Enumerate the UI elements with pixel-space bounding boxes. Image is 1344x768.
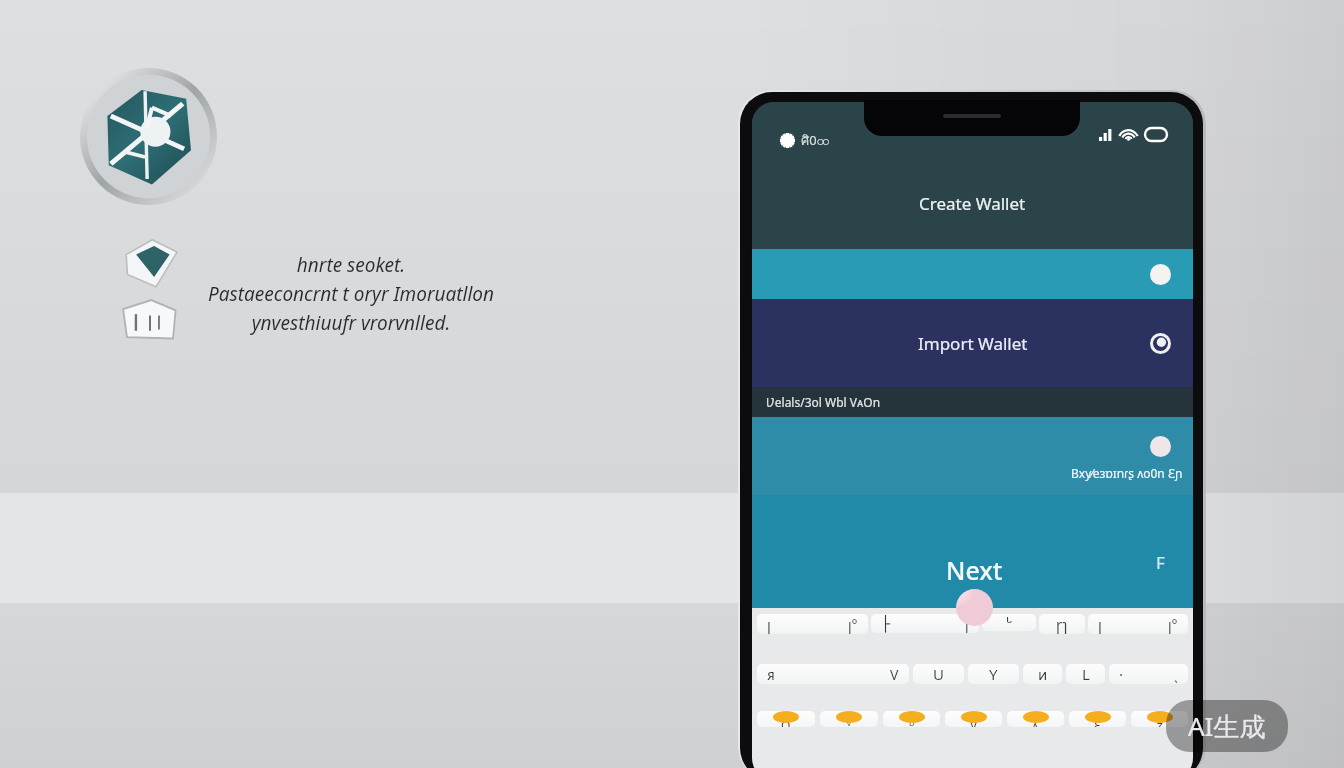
staticText: ꞁ°: [1168, 615, 1178, 634]
button[interactable]: ᴙ: [757, 664, 909, 684]
button[interactable]: ├: [871, 614, 979, 633]
other: Import wallet icon: [1150, 333, 1171, 354]
button[interactable]: ᴎ: [1023, 664, 1062, 684]
staticText: ·: [1119, 664, 1124, 684]
staticText: ᵛ: [847, 717, 851, 727]
staticText: ꞁ: [965, 614, 969, 633]
staticText: Next: [946, 553, 1003, 587]
button[interactable]: ᴀ: [1007, 711, 1064, 727]
staticText: hnrte seoket.: [186, 252, 516, 278]
staticText: ศิ0ထ: [801, 130, 830, 151]
staticText: ˎ: [1174, 665, 1178, 684]
button[interactable]: ꞁ: [1088, 614, 1188, 634]
staticText: ᴙ: [767, 664, 775, 684]
button[interactable]: ᵛ: [820, 711, 878, 727]
staticText: Create Wallet: [919, 192, 1026, 215]
staticText: ʓ: [1157, 717, 1163, 727]
staticText: Q: [781, 717, 791, 727]
staticText: ᴀ: [1032, 717, 1039, 727]
button[interactable]: Create Wallet: [752, 158, 1193, 249]
button[interactable]: ᴰ: [883, 711, 940, 727]
button[interactable]: Import Wallet: [752, 299, 1193, 387]
staticText: ɼɿ: [1056, 614, 1068, 634]
staticText: ꞁ: [1098, 614, 1102, 634]
staticText: F: [1156, 551, 1165, 574]
staticText: Bxy⁄eɜɒɪnɾʂ ʌo0n Ɛɲ: [1071, 465, 1183, 481]
staticText: ᴰ: [909, 717, 915, 727]
button[interactable]: ·: [1109, 664, 1188, 684]
button[interactable]: Q: [757, 711, 815, 727]
button[interactable]: Y: [968, 664, 1019, 684]
staticText: ꞁ: [767, 614, 771, 634]
staticText: ꞁ°: [848, 615, 858, 634]
button[interactable]: [752, 249, 1193, 299]
button[interactable]: ʓ: [1131, 711, 1188, 727]
staticText: AI生成: [1188, 708, 1266, 744]
button[interactable]: V: [945, 711, 1002, 727]
staticText: Ɛ: [1094, 717, 1102, 727]
button[interactable]: Ɛ: [1069, 711, 1126, 727]
button[interactable]: U: [913, 664, 964, 684]
button[interactable]: ꞁ: [757, 614, 868, 634]
staticText: V: [890, 665, 899, 684]
staticText: ├: [881, 615, 891, 632]
staticText: ynvesthiuufr vrorvnlled.: [186, 310, 516, 336]
button[interactable]: L: [1066, 664, 1105, 684]
staticText: ᒡ: [1006, 614, 1013, 631]
button[interactable]: Next: [932, 549, 1017, 591]
button[interactable]: ᒡ: [982, 614, 1036, 631]
staticText: Pastaeeconcrnt t oryr Imoruatllon: [186, 281, 516, 307]
staticText: Ʋelals/3ol Wbl VᴀOn: [766, 394, 881, 410]
staticText: L: [1082, 664, 1090, 684]
staticText: ᴎ: [1038, 664, 1048, 684]
staticText: Import Wallet: [918, 332, 1028, 355]
staticText: U: [933, 664, 944, 684]
staticText: V: [970, 717, 978, 727]
staticText: Y: [989, 664, 998, 684]
button[interactable]: ɼɿ: [1039, 614, 1085, 634]
